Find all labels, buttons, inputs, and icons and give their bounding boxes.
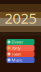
staticText: Toast [11, 51, 20, 57]
staticText: 2025 [4, 8, 36, 28]
staticText: Music [11, 57, 22, 63]
staticText: Party [11, 45, 20, 51]
button[interactable]: Party [6, 45, 34, 51]
button[interactable]: Music [6, 57, 34, 63]
staticText: Dinner [11, 39, 23, 45]
button[interactable]: Dinner [6, 39, 34, 45]
button[interactable]: Toast [6, 51, 34, 57]
